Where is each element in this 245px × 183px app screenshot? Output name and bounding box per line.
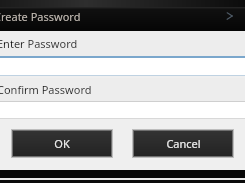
staticText: Cancel: [166, 136, 201, 151]
button[interactable]: Confirm Password: [0, 78, 245, 101]
button[interactable]: OK: [13, 131, 111, 156]
button[interactable]: Enter Password: [0, 31, 245, 56]
staticText: Create Password: [0, 9, 81, 24]
staticText: Enter Password: [0, 36, 78, 51]
button[interactable]: Close: [221, 7, 239, 25]
button[interactable]: Cancel: [134, 131, 232, 156]
staticText: OK: [54, 136, 70, 151]
staticText: Confirm Password: [0, 82, 92, 97]
